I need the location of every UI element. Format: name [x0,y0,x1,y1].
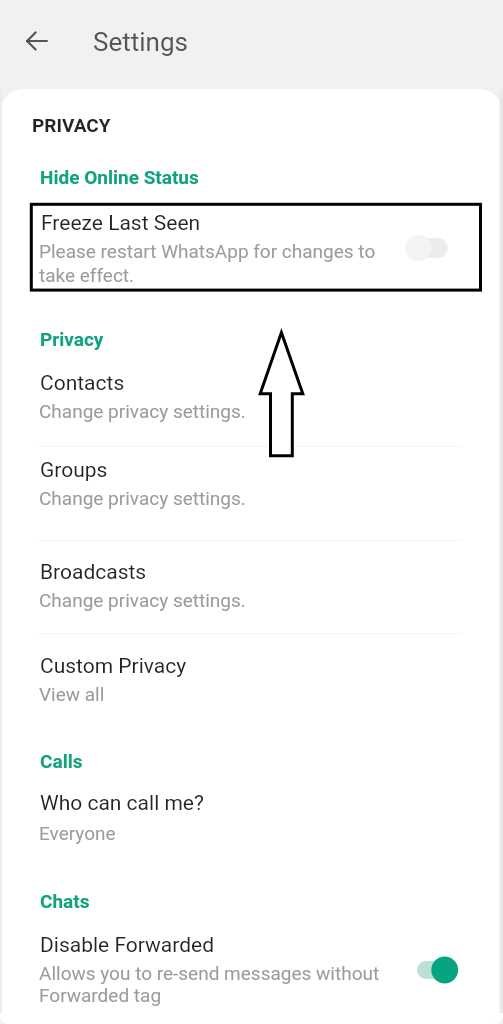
staticText: Broadcasts [40,560,147,585]
staticText: View all [39,683,105,705]
staticText: Freeze Last Seen [41,211,201,236]
staticText: Who can call me? [40,791,204,816]
staticText: take effect. [39,264,135,286]
staticText: Groups [40,458,108,483]
staticText: Change privacy settings. [39,400,246,422]
staticText: Calls [40,750,83,772]
staticText: Disable Forwarded [40,933,214,958]
staticText: Everyone [39,822,116,844]
button[interactable]: Contacts [0,366,503,438]
staticText: Chats [40,890,90,912]
staticText: Settings [93,27,188,57]
button[interactable]: Hide Online Status [0,166,503,206]
staticText: Custom Privacy [40,654,187,679]
button[interactable]: Privacy [0,328,503,362]
staticText: Allows you to re-send messages without [39,962,380,984]
staticText: Contacts [40,371,125,396]
button[interactable]: Disable Forwarded [0,928,503,1020]
staticText: PRIVACY [32,114,111,136]
staticText: Change privacy settings. [39,589,246,611]
button[interactable]: Freeze Last Seen [0,204,503,294]
staticText: Privacy [40,328,104,350]
button[interactable]: Who can call me? [0,786,503,858]
staticText: Hide Online Status [40,166,199,188]
button[interactable]: Broadcasts [0,555,503,627]
button[interactable]: Custom Privacy [0,649,503,721]
button[interactable]: Groups [0,453,503,525]
button[interactable]: Calls [0,750,503,784]
staticText: Change privacy settings. [39,487,246,509]
staticText: Forwarded tag [39,984,162,1006]
button[interactable]: Chats [0,890,503,924]
button[interactable]: Back [10,13,64,67]
staticText: Please restart WhatsApp for changes to [39,240,376,262]
